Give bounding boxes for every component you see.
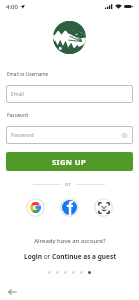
staticText: Password (7, 112, 28, 118)
staticText: Email (11, 91, 24, 98)
button[interactable]: Sign up with Facebook (59, 197, 80, 218)
button[interactable]: Continue as a guest (52, 252, 116, 261)
button[interactable]: Login (24, 252, 42, 261)
button[interactable]: SIGN UP (6, 152, 133, 171)
staticText: Email or Username (7, 71, 49, 77)
staticText: SIGN UP (52, 157, 87, 167)
staticText: or (42, 252, 52, 261)
staticText: Password (11, 132, 34, 139)
button[interactable]: Back (5, 285, 19, 299)
staticText: Already have an account? (34, 237, 106, 245)
staticText: Continue as a guest (52, 252, 116, 261)
button[interactable]: Sign up with Face ID (93, 197, 114, 218)
staticText: or (65, 180, 72, 188)
button[interactable]: Sign up with Google (25, 197, 46, 218)
staticText: Login (24, 252, 42, 261)
other: Show password (121, 132, 128, 139)
button[interactable]: Password (6, 126, 133, 144)
button[interactable]: Email (6, 85, 133, 103)
staticText: 4:00 (6, 3, 18, 11)
